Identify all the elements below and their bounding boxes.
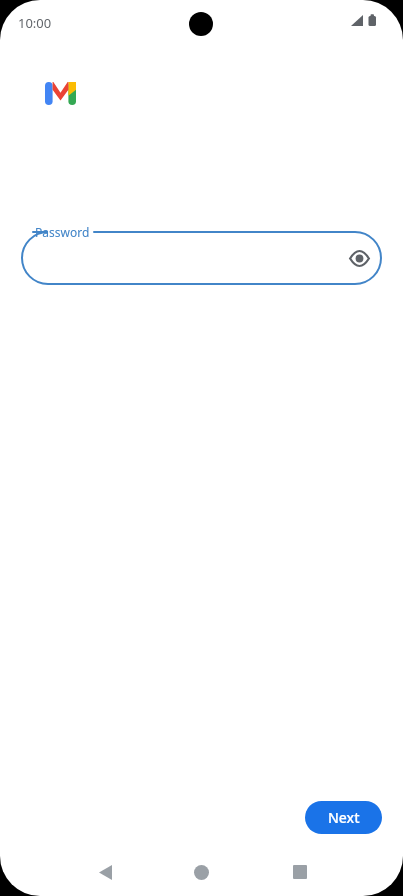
button[interactable]: Recent apps	[274, 846, 326, 896]
button[interactable]: Back	[79, 846, 131, 896]
staticText: Password	[35, 224, 90, 240]
button[interactable]: Password	[21, 231, 382, 285]
staticText: 10:00	[18, 14, 52, 32]
staticText: Next	[328, 808, 360, 827]
button[interactable]: Next	[305, 801, 382, 834]
button[interactable]: Home	[175, 846, 227, 896]
button[interactable]: Show password	[340, 239, 378, 277]
